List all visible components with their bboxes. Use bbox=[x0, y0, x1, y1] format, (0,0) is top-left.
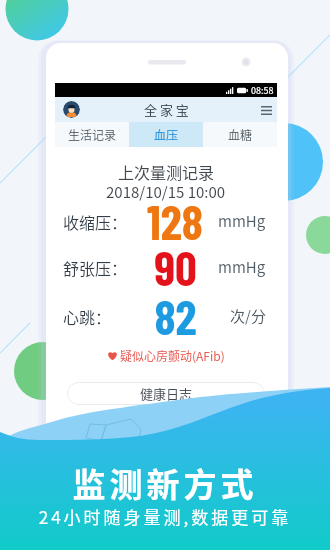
staticText: 2018/10/15 10:00 bbox=[106, 181, 226, 203]
staticText: 82 bbox=[154, 287, 197, 345]
staticText: 收缩压： bbox=[63, 210, 128, 233]
staticText: 心跳： bbox=[63, 305, 112, 328]
button[interactable]: Menu bbox=[255, 99, 277, 121]
staticText: 舒张压： bbox=[63, 256, 128, 279]
staticText: 全 家 宝 bbox=[144, 100, 189, 119]
staticText: 生活记录 bbox=[68, 126, 117, 143]
staticText: 08:58 bbox=[251, 84, 274, 97]
staticText: 健康日志 bbox=[140, 384, 193, 403]
button[interactable]: Profile bbox=[63, 101, 80, 118]
staticText: 血糖 bbox=[228, 126, 253, 143]
staticText: 上次量测记录 bbox=[118, 160, 215, 183]
staticText: 疑似心房颤动(AFib) bbox=[120, 347, 225, 364]
staticText: 128 bbox=[147, 192, 203, 250]
button[interactable]: 生活记录 bbox=[55, 122, 129, 147]
staticText: 90 bbox=[154, 238, 197, 296]
staticText: mmHg bbox=[218, 256, 266, 278]
button[interactable]: 血压 bbox=[129, 122, 203, 147]
staticText: mmHg bbox=[218, 210, 266, 232]
staticText: 24小时随身量测,数据更可靠 bbox=[0, 504, 330, 529]
staticText: 血压 bbox=[154, 126, 179, 143]
staticText: 次/分 bbox=[230, 305, 266, 327]
button[interactable]: 健康日志 bbox=[67, 382, 265, 405]
button[interactable]: 血糖 bbox=[203, 122, 277, 147]
staticText: 监测新方式 bbox=[0, 459, 330, 507]
